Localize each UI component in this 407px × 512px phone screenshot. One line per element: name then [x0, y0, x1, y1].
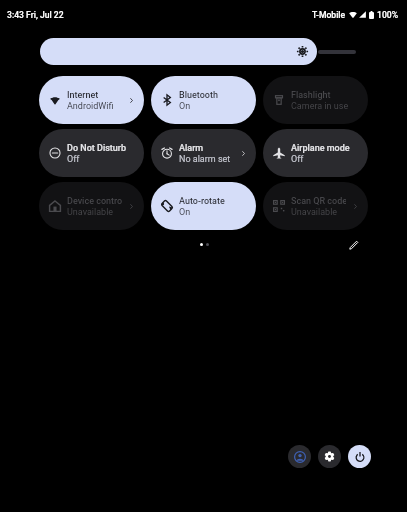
- staticText: On: [179, 207, 191, 218]
- button[interactable]: Airplane mode: [263, 129, 368, 177]
- staticText: Bluetooth: [179, 90, 218, 101]
- staticText: Unavailable: [67, 207, 114, 218]
- staticText: Auto-rotate: [179, 196, 225, 207]
- staticText: Flashlight: [291, 90, 331, 101]
- button[interactable]: [40, 38, 356, 65]
- staticText: On: [179, 101, 191, 112]
- button[interactable]: Flashlight: [263, 76, 368, 124]
- staticText: Off: [67, 154, 80, 165]
- button[interactable]: Power: [348, 445, 371, 468]
- button[interactable]: Internet: [39, 76, 144, 124]
- button[interactable]: Auto-rotate: [151, 182, 256, 230]
- button[interactable]: Alarm: [151, 129, 256, 177]
- staticText: 100%: [377, 10, 398, 20]
- button[interactable]: Settings: [318, 445, 341, 468]
- button[interactable]: Device controls: [39, 182, 144, 230]
- button[interactable]: Bluetooth: [151, 76, 256, 124]
- staticText: Do Not Disturb: [67, 143, 127, 154]
- staticText: Internet: [67, 90, 99, 101]
- staticText: Off: [291, 154, 304, 165]
- staticText: Device controls: [67, 196, 122, 207]
- staticText: Unavailable: [291, 207, 338, 218]
- button[interactable]: Edit tiles: [344, 235, 363, 254]
- button[interactable]: Scan QR code: [263, 182, 368, 230]
- staticText: Scan QR code: [291, 196, 346, 207]
- staticText: No alarm set: [179, 154, 231, 165]
- staticText: Airplane mode: [291, 143, 350, 154]
- button[interactable]: User: [288, 445, 311, 468]
- staticText: Alarm: [179, 143, 204, 154]
- staticText: Camera in use: [291, 101, 349, 112]
- staticText: 3:43 Fri, Jul 22: [7, 10, 64, 20]
- staticText: T-Mobile: [312, 10, 346, 20]
- staticText: AndroidWifi: [67, 101, 114, 112]
- button[interactable]: Do Not Disturb: [39, 129, 144, 177]
